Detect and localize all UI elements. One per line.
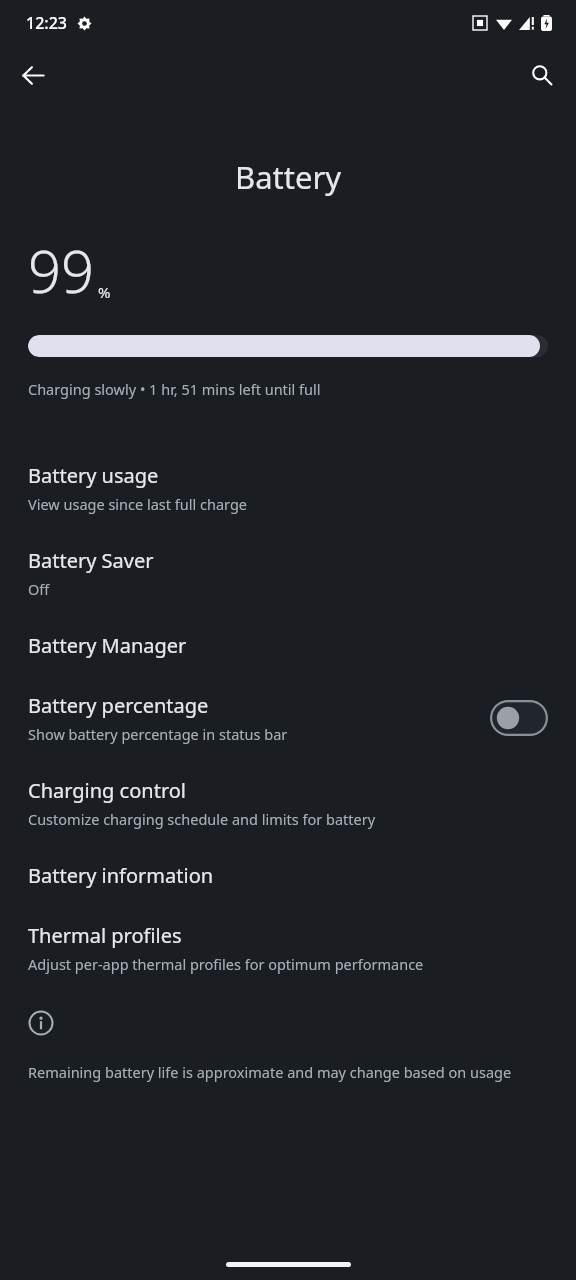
button[interactable]: Battery Manager bbox=[0, 632, 576, 659]
staticText: Battery percentage bbox=[28, 692, 209, 719]
staticText: Adjust per-app thermal profiles for opti… bbox=[28, 954, 424, 974]
button[interactable]: Battery information bbox=[0, 862, 576, 889]
staticText: Thermal profiles bbox=[28, 922, 182, 949]
button[interactable]: Thermal profiles bbox=[0, 922, 576, 974]
button[interactable]: Back bbox=[10, 52, 56, 98]
staticText: Battery Saver bbox=[28, 547, 154, 574]
button[interactable]: Search bbox=[519, 52, 565, 98]
staticText: Show battery percentage in status bar bbox=[28, 724, 288, 744]
staticText: Battery usage bbox=[28, 462, 159, 489]
staticText: Off bbox=[28, 579, 50, 599]
staticText: Remaining battery life is approximate an… bbox=[28, 1062, 512, 1082]
button[interactable]: Charging control bbox=[0, 777, 576, 829]
staticText: Battery Manager bbox=[28, 632, 187, 659]
button[interactable]: Battery Saver bbox=[0, 547, 576, 599]
staticText: View usage since last full charge bbox=[28, 494, 247, 514]
staticText: Battery information bbox=[28, 862, 214, 889]
staticText: 99 bbox=[28, 231, 95, 310]
staticText: Battery bbox=[0, 156, 576, 198]
button[interactable]: Battery percentage bbox=[0, 692, 576, 744]
button[interactable]: Battery usage bbox=[0, 462, 576, 514]
staticText: % bbox=[98, 282, 111, 302]
staticText: Customize charging schedule and limits f… bbox=[28, 809, 376, 829]
staticText: Charging control bbox=[28, 777, 186, 804]
staticText: 12:23 bbox=[26, 12, 67, 34]
staticText: Charging slowly • 1 hr, 51 mins left unt… bbox=[28, 379, 321, 399]
